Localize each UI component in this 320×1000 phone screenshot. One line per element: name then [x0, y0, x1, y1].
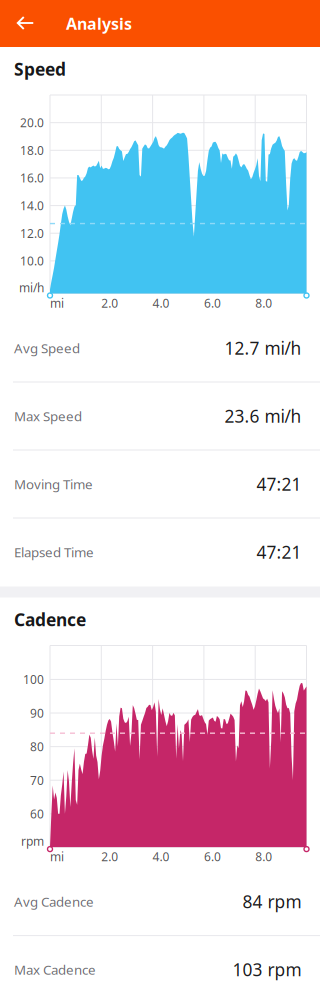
staticText: Avg Cadence	[14, 893, 94, 910]
staticText: Avg Speed	[14, 339, 80, 357]
staticText: mi/h	[19, 279, 44, 295]
staticText: 4.0	[153, 295, 170, 311]
button[interactable]: Max Speed	[0, 382, 320, 450]
staticText: 47:21	[256, 540, 301, 563]
staticText: 4.0	[153, 849, 170, 864]
staticText: 10.0	[20, 253, 44, 269]
staticText: Max Speed	[14, 407, 82, 425]
staticText: 14.0	[20, 198, 44, 213]
staticText: Speed	[14, 57, 66, 80]
staticText: mi	[50, 295, 64, 311]
staticText: 8.0	[255, 295, 272, 311]
button[interactable]: Max Cadence	[0, 936, 320, 1000]
button[interactable]: Elapsed Time	[0, 518, 320, 586]
staticText: 2.0	[101, 849, 118, 864]
button[interactable]: Back	[0, 0, 48, 47]
button[interactable]: Moving Time	[0, 450, 320, 518]
staticText: 70	[30, 772, 44, 788]
staticText: 20.0	[20, 115, 44, 131]
staticText: 16.0	[20, 170, 44, 186]
staticText: 23.6 mi/h	[224, 404, 301, 427]
staticText: 12.7 mi/h	[224, 336, 301, 359]
staticText: 8.0	[255, 849, 272, 864]
staticText: mi	[50, 849, 64, 864]
staticText: 2.0	[101, 295, 118, 311]
staticText: Analysis	[66, 13, 132, 34]
staticText: 6.0	[204, 849, 221, 864]
staticText: 12.0	[20, 225, 44, 241]
staticText: Elapsed Time	[14, 543, 94, 561]
staticText: 100	[23, 671, 44, 687]
button[interactable]: Avg Cadence	[0, 868, 320, 936]
staticText: rpm	[21, 833, 44, 849]
staticText: 47:21	[256, 472, 301, 495]
staticText: Cadence	[14, 608, 86, 631]
staticText: 103 rpm	[232, 958, 301, 981]
staticText: 80	[30, 739, 44, 755]
staticText: Moving Time	[14, 475, 93, 493]
button[interactable]: Avg Speed	[0, 314, 320, 382]
staticText: 18.0	[20, 142, 44, 158]
staticText: 84 rpm	[242, 890, 301, 913]
staticText: 60	[30, 806, 44, 822]
staticText: Max Cadence	[14, 961, 96, 978]
staticText: 90	[30, 705, 44, 721]
staticText: 6.0	[204, 295, 221, 311]
